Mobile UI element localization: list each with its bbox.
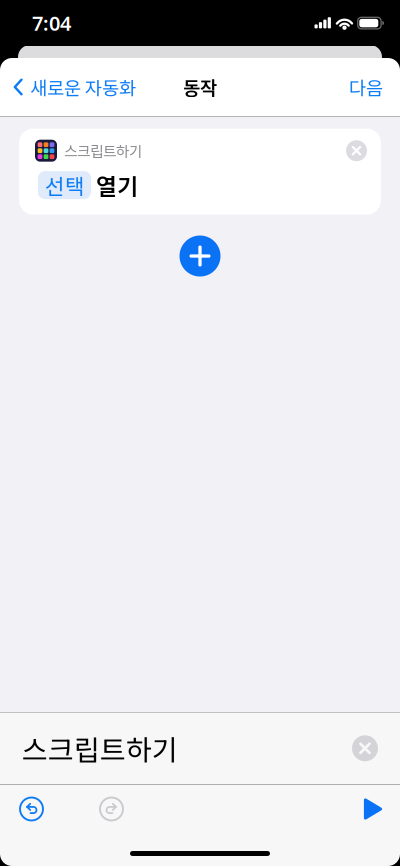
button[interactable]: Clear [352, 735, 378, 761]
button[interactable]: 새로운 자동화 [0, 63, 144, 110]
button[interactable]: Run [345, 786, 400, 831]
staticText: 스크립트하기 [22, 728, 178, 768]
button[interactable]: Undo [0, 785, 59, 832]
staticText: 스크립트하기 [64, 140, 142, 161]
button[interactable]: 다음 [337, 63, 400, 110]
button[interactable]: Redo [59, 785, 141, 832]
staticText: 선택 [45, 170, 85, 201]
staticText: 다음 [349, 73, 383, 100]
button[interactable]: Remove action [346, 140, 367, 161]
staticText: 동작 [183, 73, 217, 100]
staticText: 7:04 [32, 10, 71, 36]
staticText: 열기 [96, 169, 138, 201]
button[interactable]: Add action [179, 235, 220, 276]
staticText: 새로운 자동화 [30, 73, 136, 100]
